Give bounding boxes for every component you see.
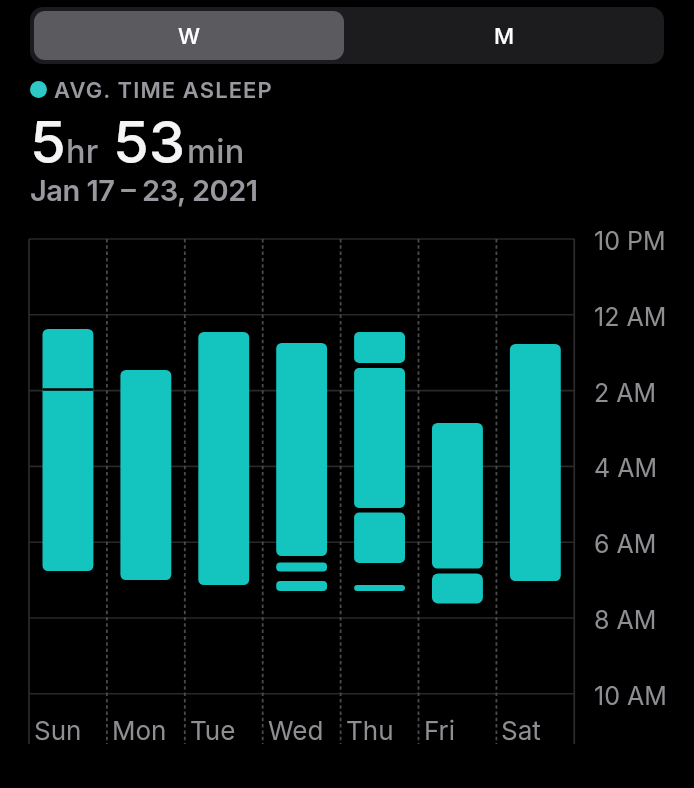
staticText: Mon xyxy=(112,715,167,746)
staticText: Sat xyxy=(501,715,541,746)
staticText: Tue xyxy=(190,715,236,746)
staticText: 6 AM xyxy=(594,529,657,559)
button[interactable]: W xyxy=(34,11,344,60)
staticText: hr xyxy=(66,132,99,171)
staticText: 53 xyxy=(113,107,186,177)
staticText: 8 AM xyxy=(594,605,657,635)
staticText: M xyxy=(494,23,515,50)
staticText: 2 AM xyxy=(594,378,657,408)
staticText: Fri xyxy=(424,715,456,746)
staticText: Sun xyxy=(34,715,82,746)
staticText: 4 AM xyxy=(594,453,658,483)
staticText: Jan 17 – 23, 2021 xyxy=(30,173,258,208)
staticText: 10 PM xyxy=(594,226,666,256)
staticText: Wed xyxy=(268,715,324,746)
staticText: 5 xyxy=(30,107,66,177)
staticText: Thu xyxy=(346,715,394,746)
staticText: 10 AM xyxy=(594,681,667,711)
button[interactable]: M xyxy=(348,11,660,60)
staticText: 12 AM xyxy=(594,302,667,332)
staticText: min xyxy=(187,132,245,171)
staticText: W xyxy=(178,23,201,50)
staticText: AVG. TIME ASLEEP xyxy=(54,77,273,104)
